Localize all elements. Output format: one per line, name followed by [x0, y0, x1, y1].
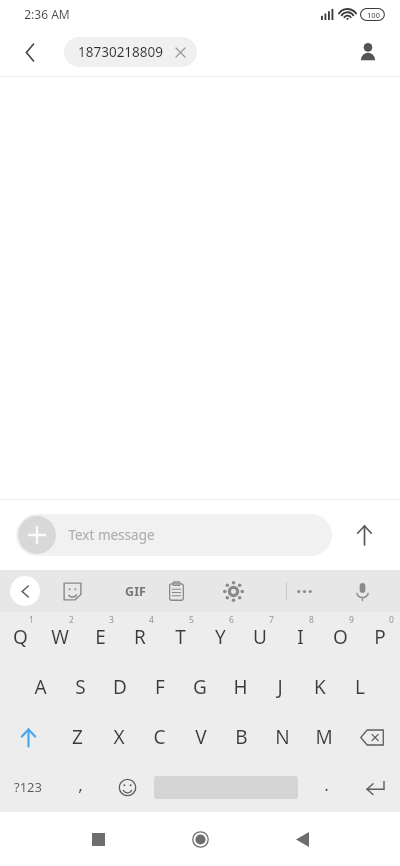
staticText: 18730218809 [78, 43, 163, 61]
staticText: N [275, 724, 290, 750]
button[interactable]: ?123 [0, 762, 56, 812]
button[interactable]: Add attachment [18, 516, 56, 554]
staticText: L [355, 674, 365, 700]
button[interactable]: Recents [74, 815, 122, 863]
staticText: R [134, 624, 146, 650]
button[interactable]: A [20, 662, 60, 712]
staticText: U [253, 624, 267, 650]
staticText: , [78, 773, 83, 796]
staticText: B [235, 724, 248, 750]
staticText: Q [13, 624, 28, 650]
button[interactable]: D [100, 662, 140, 712]
staticText: C [153, 724, 166, 750]
button[interactable]: Enter [350, 762, 400, 812]
staticText: G [193, 674, 207, 700]
staticText: . [324, 773, 329, 796]
staticText: O [333, 624, 348, 650]
button[interactable]: . [302, 762, 350, 812]
button[interactable]: E [80, 612, 120, 662]
staticText: 6 [229, 614, 234, 626]
button[interactable]: , [56, 762, 104, 812]
button[interactable]: Z [56, 712, 98, 762]
button[interactable]: L [340, 662, 380, 712]
button[interactable]: Back [278, 815, 326, 863]
button[interactable]: Close toolbar [10, 576, 40, 606]
staticText: 9 [349, 614, 354, 626]
staticText: Text message [68, 526, 155, 544]
button[interactable]: Emoji [104, 762, 150, 812]
button[interactable]: Home [176, 815, 224, 863]
button[interactable]: K [300, 662, 340, 712]
button[interactable]: O [320, 612, 360, 662]
staticText: X [113, 724, 125, 750]
staticText: 0 [389, 614, 394, 626]
button[interactable]: C [139, 712, 180, 762]
staticText: M [315, 724, 333, 750]
staticText: V [195, 724, 207, 750]
staticText: K [314, 674, 326, 700]
staticText: S [75, 674, 86, 700]
staticText: ?123 [14, 778, 42, 796]
button[interactable]: Shift [0, 712, 56, 762]
staticText: Y [215, 624, 226, 650]
button[interactable]: Y [200, 612, 240, 662]
staticText: P [374, 624, 386, 650]
staticText: 4 [149, 614, 154, 626]
button[interactable]: S [60, 662, 100, 712]
button[interactable]: T [160, 612, 200, 662]
staticText: A [34, 674, 47, 700]
button[interactable]: G [180, 662, 220, 712]
button[interactable]: Settings [214, 572, 252, 610]
staticText: J [277, 674, 283, 700]
button[interactable]: F [140, 662, 180, 712]
button[interactable]: I [280, 612, 320, 662]
button[interactable]: W [40, 612, 80, 662]
button[interactable]: Remove recipient [171, 43, 189, 61]
button[interactable]: Send [342, 513, 386, 557]
button[interactable]: U [240, 612, 280, 662]
button[interactable]: Stickers [53, 572, 91, 610]
button[interactable]: Add attachment [16, 514, 332, 556]
staticText: H [233, 674, 248, 700]
staticText: GIF [125, 583, 146, 600]
staticText: 3 [109, 614, 114, 626]
staticText: 8 [309, 614, 314, 626]
button[interactable]: X [98, 712, 139, 762]
button[interactable]: Clipboard [157, 572, 195, 610]
button[interactable]: B [221, 712, 262, 762]
staticText: 2 [69, 614, 74, 626]
button[interactable]: Space [150, 762, 302, 812]
staticText: I [297, 624, 304, 650]
button[interactable]: 18730218809 [64, 37, 197, 67]
button[interactable]: Backspace [344, 712, 400, 762]
staticText: F [155, 674, 165, 700]
staticText: 2:36 AM [24, 6, 70, 22]
staticText: E [95, 624, 106, 650]
button[interactable]: More options [285, 572, 323, 610]
button[interactable]: H [220, 662, 260, 712]
staticText: 7 [269, 614, 274, 626]
staticText: Z [72, 724, 83, 750]
staticText: 5 [189, 614, 194, 626]
staticText: 100 [367, 10, 380, 20]
staticText: W [51, 624, 69, 650]
button[interactable]: N [262, 712, 303, 762]
button[interactable]: M [303, 712, 344, 762]
staticText: T [175, 624, 186, 650]
button[interactable]: Back [10, 32, 50, 72]
button[interactable]: J [260, 662, 300, 712]
staticText: D [113, 674, 127, 700]
button[interactable]: GIF [116, 570, 154, 612]
staticText: 1 [29, 614, 34, 626]
button[interactable]: P [360, 612, 400, 662]
button[interactable]: Q [0, 612, 40, 662]
button[interactable]: V [180, 712, 221, 762]
button[interactable]: Contacts [348, 32, 388, 72]
button[interactable]: Voice input [343, 572, 381, 610]
button[interactable]: R [120, 612, 160, 662]
